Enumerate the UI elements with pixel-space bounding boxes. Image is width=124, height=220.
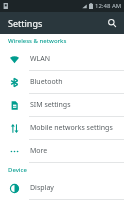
staticText: Display: [30, 183, 54, 193]
staticText: WLAN: [30, 54, 50, 64]
staticText: Settings: [8, 17, 43, 29]
button[interactable]: Display: [0, 177, 124, 199]
button[interactable]: SIM settings: [0, 94, 124, 116]
staticText: Wireless & networks: [8, 37, 67, 45]
button[interactable]: Mobile networks settings: [0, 117, 124, 139]
staticText: Device: [8, 166, 27, 174]
staticText: 12:48 AM: [95, 2, 122, 10]
button[interactable]: More: [0, 140, 124, 162]
button[interactable]: WLAN: [0, 48, 124, 70]
staticText: More: [30, 146, 48, 156]
button[interactable]: Search: [104, 15, 120, 31]
staticText: Bluetooth: [30, 77, 63, 87]
button[interactable]: Bluetooth: [0, 71, 124, 93]
staticText: SIM settings: [30, 100, 71, 110]
staticText: Mobile networks settings: [30, 123, 113, 133]
